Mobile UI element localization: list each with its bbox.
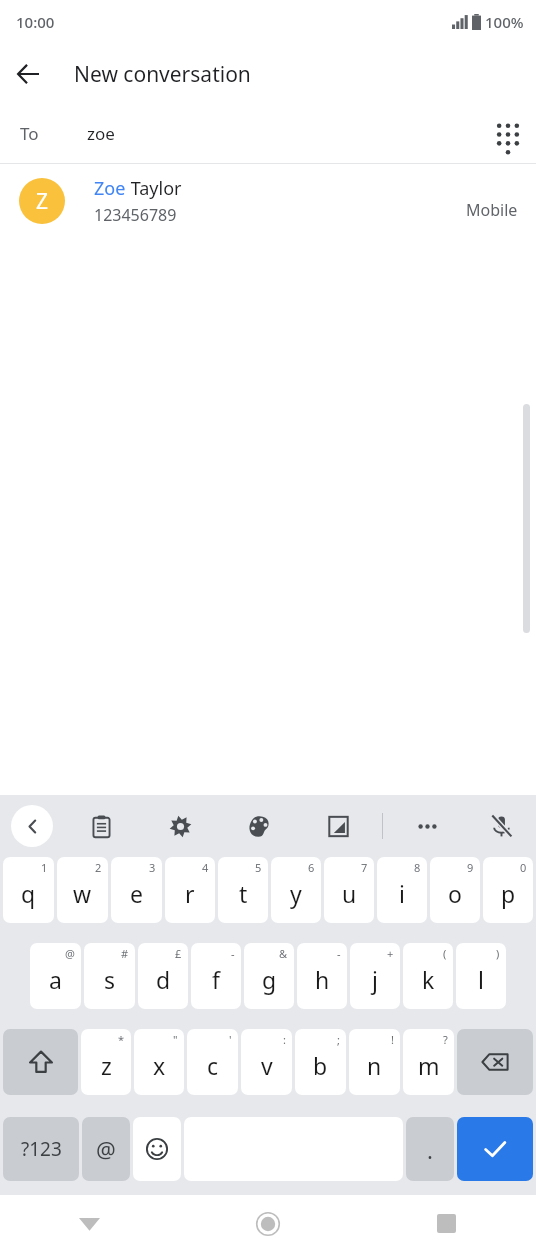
staticText: 10:00 [16,12,55,32]
staticText: 7 [361,860,368,875]
staticText: 9 [467,860,474,875]
staticText: g [262,964,277,995]
staticText: 6 [308,860,315,875]
button[interactable]: & [244,943,294,1009]
staticText: : [283,1032,286,1047]
staticText: New conversation [74,60,251,89]
button[interactable]: Backspace [457,1029,533,1095]
button[interactable]: Z [0,164,536,238]
button[interactable]: : [241,1029,292,1095]
button[interactable]: - [191,943,241,1009]
button[interactable]: Recents [357,1195,536,1252]
staticText: x [153,1050,166,1081]
staticText: ( [443,946,447,961]
staticText: . [427,1135,433,1165]
button[interactable]: # [84,943,135,1009]
staticText: ) [496,946,500,961]
staticText: k [422,964,435,995]
button[interactable]: 9 [430,857,480,923]
staticText: m [418,1050,440,1081]
staticText: ! [391,1032,394,1047]
button[interactable]: Voice input off [482,807,520,845]
button[interactable]: 1 [3,857,54,923]
staticText: - [231,946,235,961]
staticText: & [279,946,288,961]
button[interactable]: @ [82,1117,130,1181]
staticText: r [185,878,195,909]
button[interactable]: Settings [161,807,199,845]
staticText: ; [337,1032,340,1047]
button[interactable]: Shift [3,1029,78,1095]
button[interactable]: 4 [165,857,215,923]
button[interactable]: More [408,807,446,845]
button[interactable]: . [406,1117,454,1181]
button[interactable]: - [297,943,347,1009]
button[interactable]: Back [0,46,56,102]
staticText: o [448,878,462,909]
staticText: 8 [414,860,421,875]
staticText: l [478,964,484,995]
staticText: + [387,946,394,961]
button[interactable]: * [81,1029,131,1095]
button[interactable]: ? [403,1029,454,1095]
staticText: 100% [485,12,524,32]
button[interactable]: 3 [111,857,162,923]
staticText: Taylor [126,176,182,201]
staticText: n [367,1050,382,1081]
button[interactable]: 5 [218,857,268,923]
staticText: y [290,878,302,909]
button[interactable]: 8 [377,857,427,923]
button[interactable]: Send [457,1117,533,1181]
button[interactable]: 6 [271,857,321,923]
staticText: # [121,946,129,961]
button[interactable]: ( [403,943,453,1009]
staticText: 4 [202,860,209,875]
staticText: i [399,878,405,909]
button[interactable]: 7 [324,857,374,923]
staticText: v [261,1050,273,1081]
button[interactable]: 0 [483,857,533,923]
staticText: q [21,878,36,909]
button[interactable]: 2 [57,857,108,923]
button[interactable]: " [134,1029,184,1095]
staticText: c [207,1050,219,1081]
button[interactable]: Back [0,1195,178,1252]
button[interactable]: Dialpad [480,106,536,162]
button[interactable]: Resize [319,807,357,845]
button[interactable]: Emoji [133,1117,181,1181]
staticText: Zoe [94,176,126,201]
staticText: f [212,964,220,995]
button[interactable]: @ [30,943,81,1009]
staticText: 1 [41,860,48,875]
staticText: e [130,878,143,909]
staticText: b [313,1050,328,1081]
button[interactable]: ! [349,1029,400,1095]
button[interactable]: ) [456,943,506,1009]
button[interactable]: Clipboard [82,807,120,845]
button[interactable]: Theme [240,807,278,845]
button[interactable]: Previous [11,805,53,847]
staticText: w [73,878,92,909]
staticText: Z [36,187,49,216]
staticText: 5 [255,860,262,875]
staticText: 123456789 [94,204,177,226]
button[interactable]: ; [295,1029,346,1095]
staticText: p [501,878,516,909]
button[interactable]: £ [138,943,188,1009]
staticText: Mobile [466,199,518,221]
staticText: t [239,878,248,909]
button[interactable]: + [350,943,400,1009]
staticText: " [173,1032,178,1047]
button[interactable]: ?123 [3,1117,79,1181]
staticText: z [101,1050,112,1081]
button[interactable]: Home [178,1195,357,1252]
staticText: - [337,946,341,961]
staticText: 0 [520,860,527,875]
button[interactable]: ' [187,1029,238,1095]
staticText: d [156,964,171,995]
staticText: * [118,1032,125,1047]
staticText: @ [65,946,75,961]
staticText: £ [175,946,182,961]
staticText: To [20,122,39,145]
